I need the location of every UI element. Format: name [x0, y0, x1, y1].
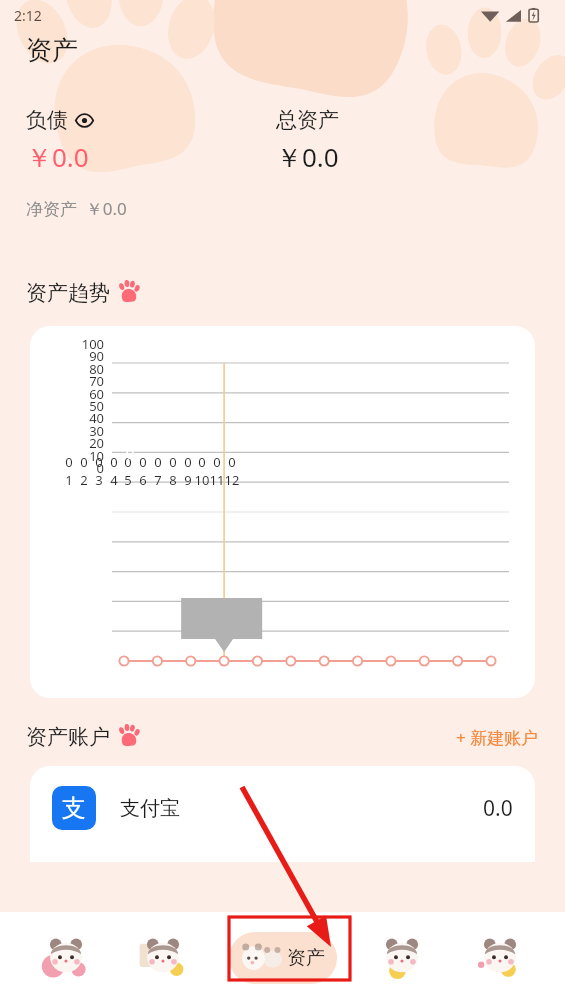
staticText: 0 [221, 453, 243, 471]
staticText: 总资产 [276, 107, 339, 133]
staticText: 0 [73, 453, 95, 471]
staticText: 0.0 [483, 794, 513, 823]
staticText: 40 [50, 409, 104, 427]
button[interactable]: 账单 [34, 926, 98, 990]
staticText: 50 [50, 397, 104, 415]
staticText: 5 [117, 471, 139, 489]
button[interactable]: 我的 [468, 926, 532, 990]
staticText: 10 [50, 447, 104, 465]
staticText: + 新建账户 [456, 726, 539, 749]
staticText: 10 [191, 471, 213, 489]
button[interactable]: + 新建账户 [456, 726, 539, 749]
staticText: 3 [88, 471, 110, 489]
staticText: 0 [50, 459, 104, 477]
staticText: 0 [177, 453, 199, 471]
staticText: 90 [50, 347, 104, 365]
button[interactable]: 负债 [26, 107, 94, 133]
staticText: 资产 [287, 946, 325, 970]
staticText: 0 [88, 453, 110, 471]
button[interactable]: 预算 [370, 926, 434, 990]
staticText: 7 [147, 471, 169, 489]
staticText: 净资产 ￥0.0 [26, 197, 127, 220]
staticText: 2:12 [14, 6, 42, 25]
staticText: 100 [50, 335, 104, 353]
staticText: 资产账户 [26, 724, 110, 750]
staticText: 支 [62, 793, 86, 823]
staticText: 0 [206, 453, 228, 471]
staticText: 30 [50, 422, 104, 440]
staticText: 1 [58, 471, 80, 489]
staticText: 0 [103, 453, 125, 471]
staticText: 70 [50, 372, 104, 390]
staticText: 负债 [26, 107, 68, 133]
staticText: 0 [58, 453, 80, 471]
staticText: 0 [191, 453, 213, 471]
staticText: 2 [73, 471, 95, 489]
button[interactable]: 支 [30, 766, 535, 862]
staticText: 6 [132, 471, 154, 489]
button[interactable]: 资产 [241, 937, 325, 979]
button[interactable]: 报表 [131, 926, 195, 990]
staticText: 0 [147, 453, 169, 471]
staticText: 9 [177, 471, 199, 489]
staticText: 8 [162, 471, 184, 489]
staticText: 80 [50, 360, 104, 378]
staticText: 4 [103, 471, 125, 489]
staticText: 60 [50, 385, 104, 403]
staticText: 0 [162, 453, 184, 471]
staticText: 11 [206, 471, 228, 489]
staticText: 20 [50, 434, 104, 452]
staticText: ￥0.0 [276, 139, 339, 175]
staticText: ￥0.0 [26, 139, 89, 175]
staticText: 资产趋势 [26, 280, 110, 306]
other: Toggle visibility [75, 111, 94, 130]
staticText: 支付宝 [120, 796, 180, 821]
staticText: 12 [221, 471, 243, 489]
staticText: 0 [113, 443, 147, 463]
staticText: 资产 [26, 34, 78, 67]
staticText: 0 [132, 453, 154, 471]
staticText: 0 [117, 453, 139, 471]
